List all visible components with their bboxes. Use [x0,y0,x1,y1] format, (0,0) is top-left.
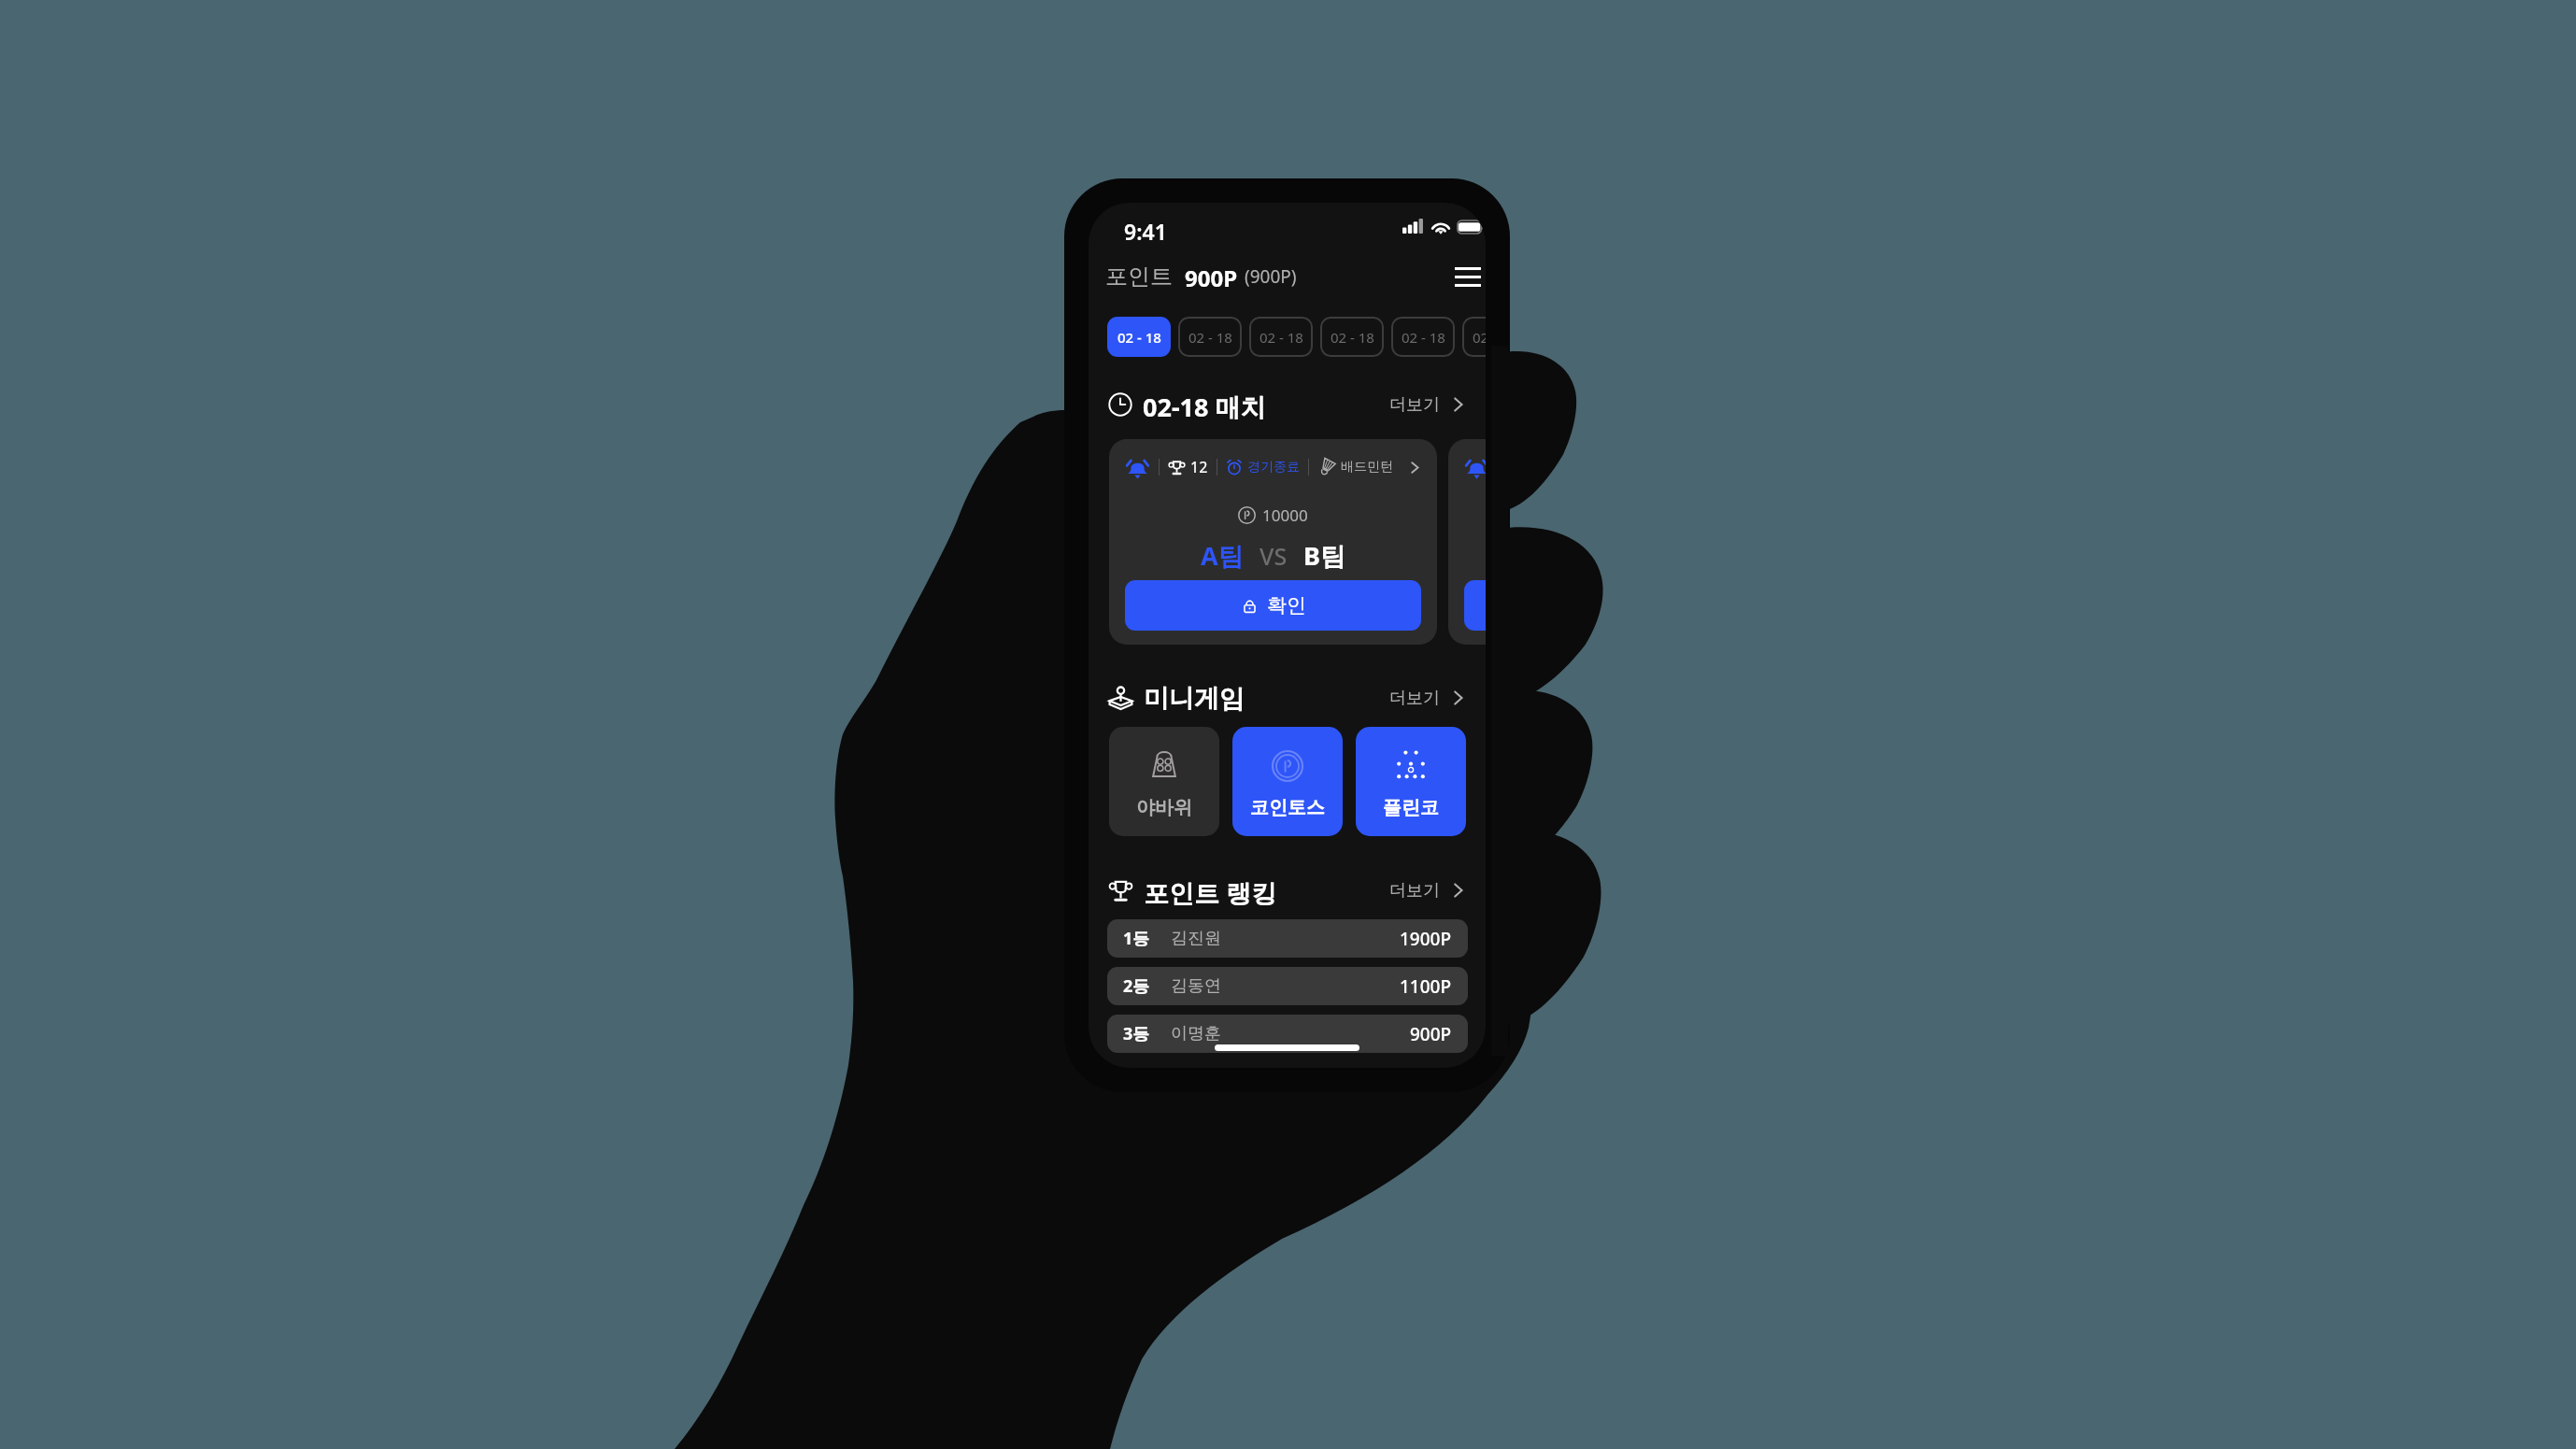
button[interactable]: 코인토스 [1232,727,1343,836]
staticText: 02 - 18 [1188,328,1232,347]
button[interactable]: 3등 [1107,1015,1468,1053]
staticText: 9:41 [1124,217,1167,246]
staticText: 코인토스 [1250,796,1325,819]
button[interactable]: 02 - 18 [1320,317,1384,357]
staticText: 김동연 [1171,975,1221,997]
staticText: 02 - 18 [1402,328,1445,347]
staticText: 이명훈 [1171,1023,1221,1044]
button[interactable]: 확인 [1125,580,1421,631]
staticText: 900P [1185,263,1238,291]
staticText: 확인 [1267,593,1306,618]
button[interactable]: 더보기 [1380,875,1469,905]
button[interactable]: 02 - 18 [1391,317,1455,357]
button[interactable]: 2등 [1107,967,1468,1005]
button[interactable]: 더보기 [1380,683,1469,713]
staticText: A팀 [1201,538,1244,573]
staticText: 더보기 [1389,880,1440,902]
staticText: 02 - 18 [1260,328,1303,347]
staticText: 야바위 [1136,796,1192,819]
staticText: 900P [1410,1022,1452,1046]
staticText: 더보기 [1389,688,1440,709]
staticText: VS [1260,540,1288,572]
staticText: 02-18 매치 [1143,390,1266,419]
staticText: B팀 [1303,538,1345,573]
staticText: 1900P [1400,927,1452,951]
staticText: 포인트 랭킹 [1144,875,1277,905]
staticText: 플린코 [1383,796,1439,819]
button[interactable]: 12 [1109,439,1437,645]
staticText: 미니게임 [1144,683,1245,713]
staticText: 배드민턴 [1341,459,1393,476]
staticText: 12 [1190,457,1208,477]
staticText: 10000 [1262,504,1308,526]
button[interactable]: 플린코 [1356,727,1466,836]
button[interactable]: 02 - 18 [1462,317,1486,357]
button[interactable]: 더보기 [1380,390,1469,419]
staticText: 02 - 18 [1473,328,1486,347]
button[interactable]: 야바위 [1109,727,1219,836]
staticText: 02 - 18 [1331,328,1374,347]
staticText: 경기종료 [1247,459,1300,476]
staticText: 더보기 [1389,394,1440,416]
button[interactable]: Menu [1451,262,1485,291]
button[interactable]: 02 - 18 [1178,317,1242,357]
staticText: 포인트 [1105,263,1173,291]
button[interactable]: 02 - 18 [1249,317,1313,357]
button[interactable]: 확인 [1464,580,1486,631]
staticText: (900P) [1245,264,1297,289]
staticText: 2등 [1123,974,1150,998]
staticText: 3등 [1123,1022,1150,1045]
button[interactable]: 02 - 18 [1107,317,1171,357]
button[interactable]: 12 [1448,439,1486,645]
button[interactable]: 1등 [1107,919,1468,958]
staticText: 1100P [1400,974,1452,999]
staticText: 김진원 [1171,928,1221,949]
staticText: 02 - 18 [1117,328,1161,347]
staticText: 1등 [1123,927,1150,950]
